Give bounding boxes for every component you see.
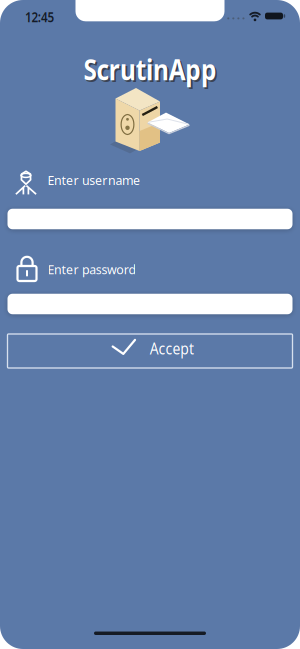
button[interactable]: Enter password <box>7 294 292 314</box>
staticText: Enter username <box>47 171 147 189</box>
staticText: Enter password <box>47 260 142 278</box>
staticText: ScrutinApp <box>73 51 226 88</box>
staticText: 12:45 <box>25 7 61 26</box>
staticText: Accept <box>146 338 197 359</box>
staticText: ScrutinApp <box>76 53 229 90</box>
button[interactable]: Enter username <box>7 209 292 229</box>
button[interactable]: Accept <box>7 334 292 368</box>
